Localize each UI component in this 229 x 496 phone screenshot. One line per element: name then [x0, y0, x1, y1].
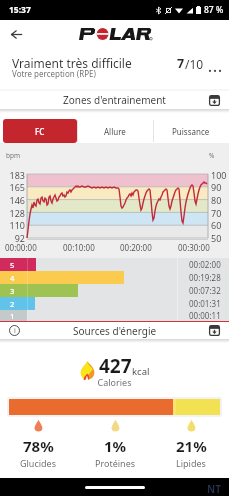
staticText: /10 — [185, 56, 204, 72]
staticText: 2 — [10, 299, 15, 309]
staticText: Allure — [104, 126, 126, 137]
button[interactable]: 3 — [0, 284, 229, 297]
staticText: 4 — [10, 273, 15, 283]
staticText: kcal — [132, 365, 150, 378]
staticText: i — [14, 326, 16, 336]
staticText: 00:19:28 — [189, 272, 221, 283]
staticText: Glucides — [20, 457, 57, 469]
button[interactable]: Allure — [77, 119, 153, 143]
staticText: 146 — [1, 194, 25, 206]
staticText: 00:00:00 — [5, 242, 37, 253]
staticText: 60 — [211, 219, 229, 231]
staticText: 87 % — [204, 4, 224, 16]
staticText: 5 — [10, 260, 15, 270]
button[interactable]: 78% — [0, 419, 77, 469]
staticText: Zones d'entrainement — [63, 93, 166, 107]
staticText: 3 — [10, 286, 15, 296]
staticText: 128 — [1, 207, 25, 219]
staticText: 00:00:11 — [189, 310, 221, 321]
staticText: 90 — [211, 181, 229, 193]
staticText: NT — [207, 482, 221, 496]
staticText: 21% — [176, 436, 207, 456]
staticText: Vraiment très difficile — [12, 55, 132, 71]
button[interactable]: Plus d'options — [203, 55, 227, 79]
staticText: 1% — [104, 436, 127, 456]
staticText: 70 — [211, 207, 229, 219]
staticText: 92 — [1, 232, 25, 244]
staticText: Protéines — [95, 457, 136, 469]
staticText: 50 — [211, 232, 229, 244]
staticText: 7 — [177, 55, 185, 72]
staticText: % — [209, 151, 215, 160]
button[interactable]: 1 — [0, 310, 229, 321]
staticText: FC — [35, 126, 45, 137]
staticText: 110 — [1, 219, 25, 231]
staticText: Puissance — [172, 126, 210, 137]
button[interactable]: Informations — [4, 322, 24, 339]
staticText: 183 — [1, 169, 25, 181]
staticText: 00:30:00 — [178, 242, 210, 253]
staticText: Sources d'énergie — [73, 324, 157, 338]
staticText: 427 — [99, 353, 132, 379]
button[interactable]: 1% — [77, 419, 153, 469]
staticText: 00:10:00 — [63, 242, 95, 253]
button[interactable]: Retour — [4, 22, 28, 46]
button[interactable]: 5 — [0, 258, 229, 271]
staticText: 78% — [23, 436, 54, 456]
button[interactable]: 2 — [0, 297, 229, 310]
staticText: Calories — [0, 376, 229, 388]
button[interactable]: Puissance — [153, 119, 229, 143]
staticText: Votre perception (RPE) — [12, 68, 96, 79]
staticText: 00:07:32 — [189, 285, 221, 296]
button[interactable]: Vraiment très difficile — [0, 48, 229, 87]
staticText: 100 — [211, 169, 229, 181]
staticText: 80 — [211, 194, 229, 206]
staticText: 00:01:31 — [189, 298, 221, 309]
staticText: 00:20:00 — [120, 242, 152, 253]
staticText: 1 — [10, 311, 15, 321]
button[interactable]: 21% — [153, 419, 229, 469]
button[interactable]: Agrandir — [205, 322, 223, 339]
staticText: Lipides — [176, 457, 206, 469]
staticText: bpm — [6, 151, 21, 160]
button[interactable]: 4 — [0, 271, 229, 284]
staticText: 165 — [1, 181, 25, 193]
staticText: 00:02:00 — [189, 259, 221, 270]
button[interactable]: FC — [3, 119, 77, 143]
staticText: 15:37 — [9, 4, 31, 16]
button[interactable]: Agrandir — [205, 91, 223, 109]
